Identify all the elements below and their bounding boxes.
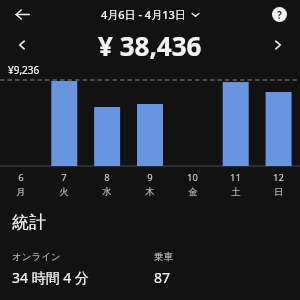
staticText: 11 [230, 171, 241, 184]
button[interactable]: 乗車 [154, 249, 300, 289]
button[interactable]: 4月6日 - 4月13日 [97, 5, 204, 24]
staticText: 10 [187, 171, 198, 184]
staticText: 34 時間 4 分 [12, 268, 89, 287]
staticText: 4月6日 - 4月13日 [101, 7, 186, 22]
staticText: 87 [154, 268, 171, 287]
staticText: ¥ 38,436 [98, 28, 202, 62]
button[interactable]: Next week [265, 32, 291, 58]
staticText: 金 [188, 186, 198, 198]
staticText: オンライン [12, 251, 61, 263]
staticText: 木 [145, 186, 155, 198]
staticText: 統計 [12, 212, 46, 233]
button[interactable]: Previous week [9, 32, 35, 58]
staticText: 9 [147, 171, 153, 184]
staticText: 水 [102, 186, 112, 198]
staticText: ? [277, 8, 282, 22]
staticText: 12 [273, 171, 284, 184]
staticText: 月 [16, 186, 26, 198]
staticText: 7 [61, 171, 67, 184]
staticText: 火 [59, 186, 69, 198]
button[interactable]: Back [8, 0, 36, 28]
staticText: 6 [18, 171, 24, 184]
button[interactable]: Help [267, 2, 291, 26]
staticText: 日 [274, 186, 284, 198]
button[interactable]: オンライン [12, 249, 150, 289]
staticText: 8 [104, 171, 110, 184]
staticText: 乗車 [154, 251, 173, 263]
staticText: 土 [231, 186, 241, 198]
staticText: ¥9,236 [8, 63, 40, 77]
